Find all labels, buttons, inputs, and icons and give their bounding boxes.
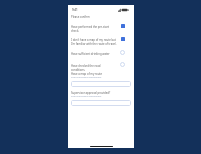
staticText: Sub instructions/Placeholder xyxy=(71,76,102,79)
button[interactable]: Supervisor approval provided? xyxy=(71,91,131,98)
button[interactable]: Have performed the pre-start check. xyxy=(68,23,134,32)
button[interactable] xyxy=(71,81,131,87)
staticText: Have checked the road conditions. xyxy=(71,64,118,72)
staticText: Have sufficient drinking water xyxy=(71,52,118,56)
button[interactable]: Have a map of my route xyxy=(71,72,131,79)
staticText: Supervisor approval provided? xyxy=(71,91,111,95)
staticText: Have a map of my route xyxy=(71,72,103,76)
staticText: Have performed the pre-start check. xyxy=(71,25,118,33)
button[interactable] xyxy=(71,100,131,106)
button[interactable]: Have sufficient drinking water xyxy=(68,50,134,56)
button[interactable]: I don't have a map of my route but I'm f… xyxy=(68,36,134,45)
staticText: Please confirm xyxy=(71,15,90,19)
staticText: 9:41 xyxy=(72,8,78,12)
staticText: I don't have a map of my route but I'm f… xyxy=(71,38,118,46)
staticText: Sub instructions/Placeholder xyxy=(71,95,102,98)
button[interactable]: Have checked the road conditions. xyxy=(68,62,134,71)
